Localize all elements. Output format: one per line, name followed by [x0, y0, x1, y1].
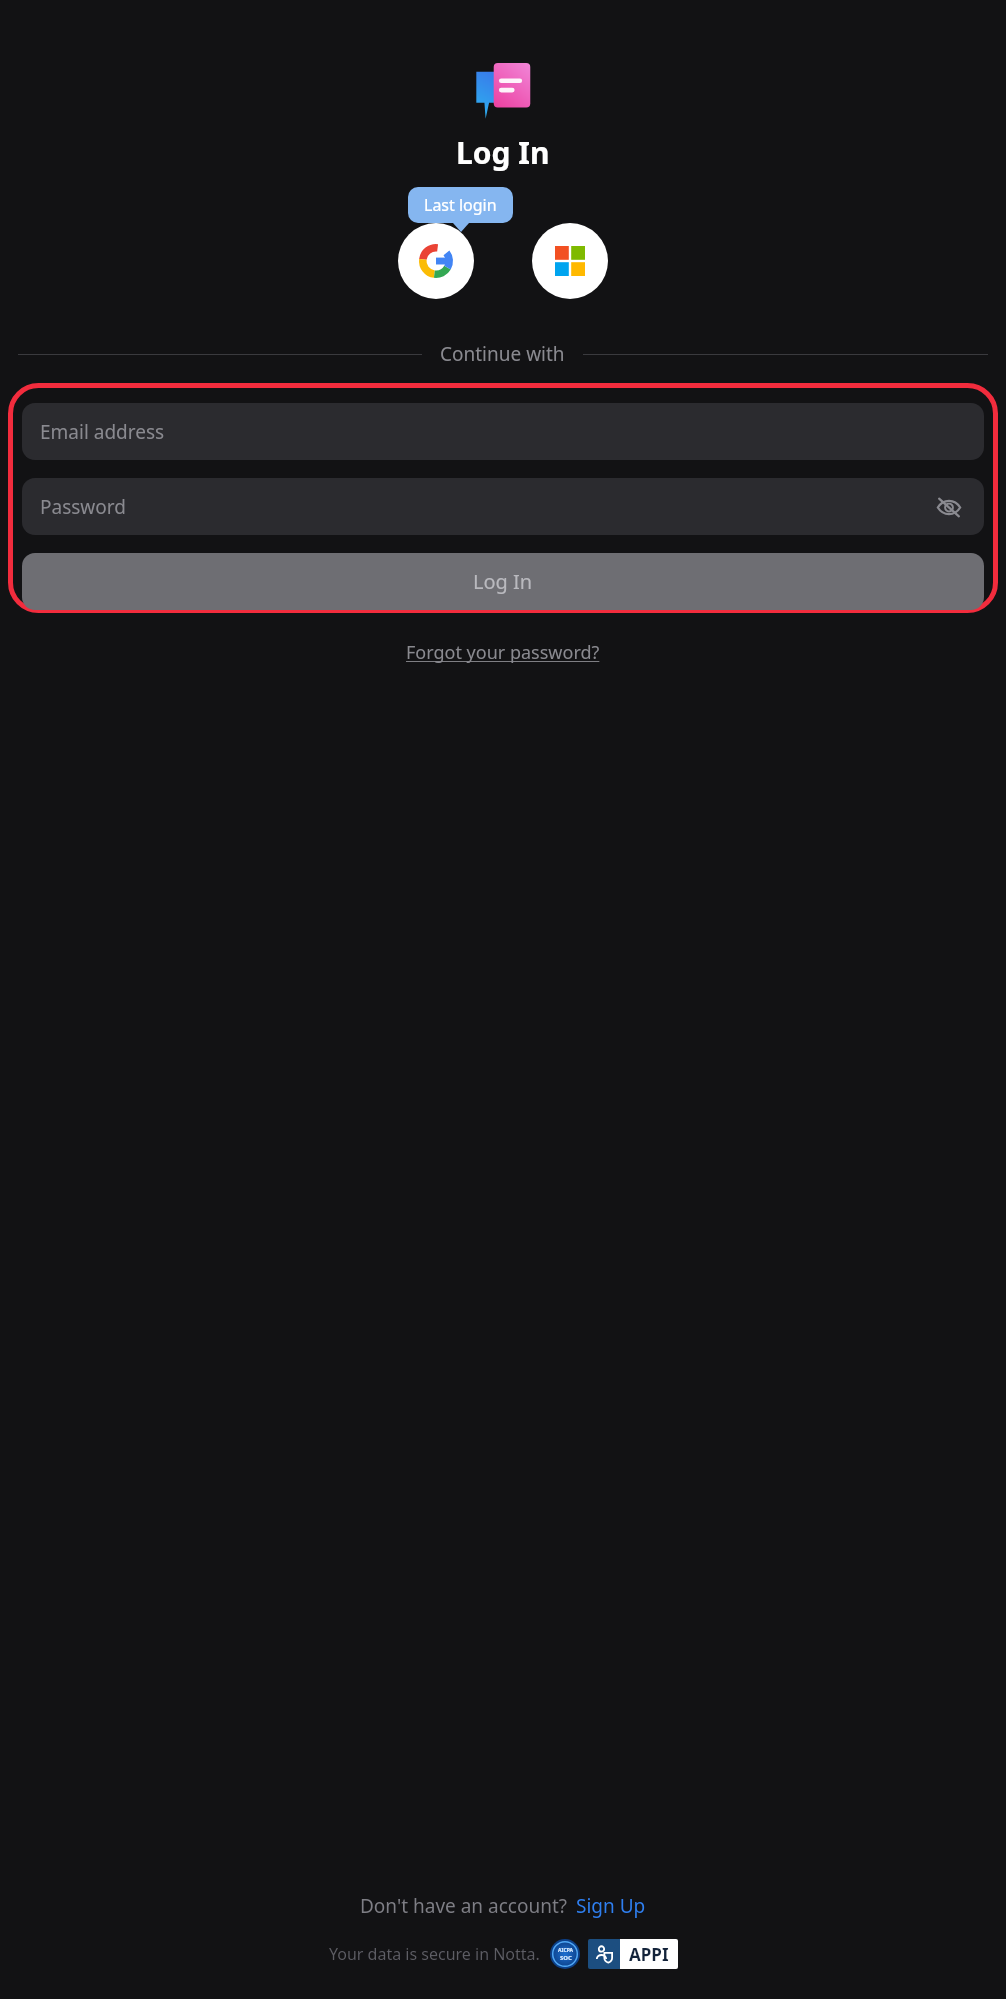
button[interactable]: Log In [22, 553, 984, 610]
staticText: Sign Up [576, 1893, 646, 1919]
staticText: APPI [629, 1943, 669, 1966]
staticText: Password [40, 494, 126, 520]
button[interactable]: Show password [932, 490, 966, 524]
button[interactable]: Sign in with Google [398, 223, 474, 299]
staticText: AICPA [558, 1947, 573, 1954]
button[interactable]: Forgot your password? [406, 640, 600, 665]
staticText: Last login [424, 194, 497, 216]
staticText: SOC [560, 1954, 572, 1962]
staticText: Continue with [440, 341, 565, 367]
button[interactable]: Email address [22, 403, 984, 460]
staticText: Your data is secure in Notta. [329, 1943, 540, 1965]
button[interactable]: Don't have an account? [360, 1893, 646, 1919]
staticText: Don't have an account? [360, 1893, 568, 1919]
staticText: Forgot your password? [406, 640, 600, 665]
staticText: Log In [456, 132, 550, 173]
staticText: Log In [473, 568, 533, 595]
staticText: Email address [40, 419, 165, 445]
button[interactable]: Sign in with Microsoft [532, 223, 608, 299]
button[interactable]: Password [22, 478, 984, 535]
